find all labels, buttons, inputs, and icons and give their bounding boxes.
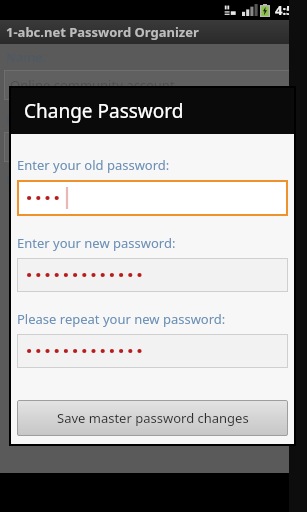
staticText: Change Password [24, 98, 184, 124]
staticText: Save master password changes [57, 409, 249, 427]
staticText: Enter your new password: [17, 234, 176, 252]
staticText: Login: [6, 110, 44, 128]
button[interactable] [17, 180, 288, 216]
button[interactable]: Save master password changes [17, 400, 288, 436]
staticText: Enter your old password: [17, 156, 170, 174]
button[interactable] [17, 334, 288, 368]
button[interactable] [17, 258, 288, 292]
staticText: Password: [6, 172, 69, 190]
staticText: 4:52 [275, 1, 301, 19]
staticText: Please repeat your new password: [17, 310, 226, 328]
staticText: 1-abc.net Password Organizer [6, 23, 199, 41]
staticText: Name: [6, 48, 47, 66]
staticText: Online community account [10, 76, 175, 94]
